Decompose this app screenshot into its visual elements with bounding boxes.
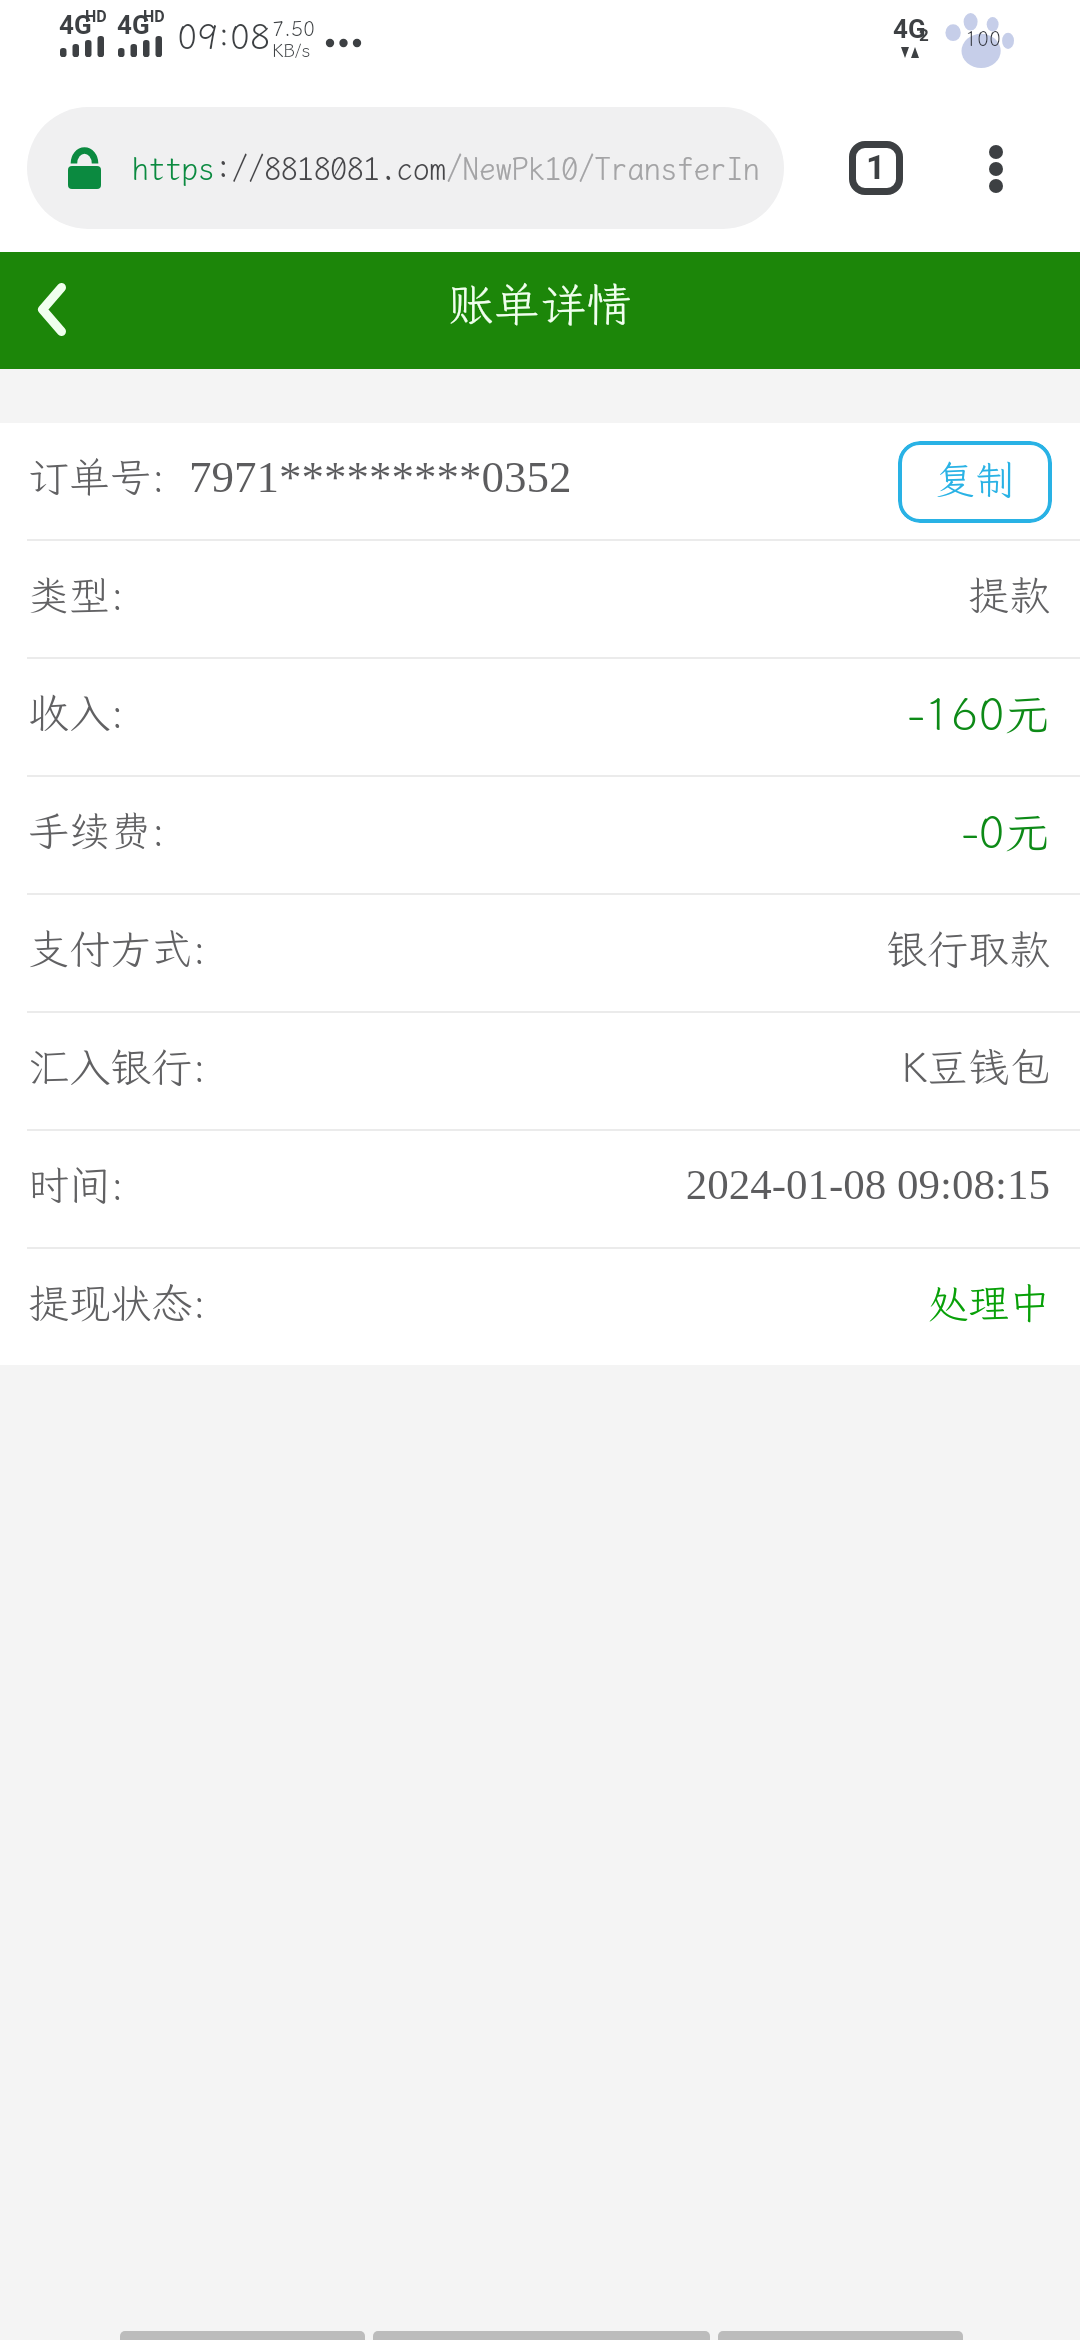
button[interactable]: 订单号: bbox=[0, 423, 1080, 539]
button[interactable]: 支付方式: bbox=[0, 895, 1080, 1011]
staticText: 1 bbox=[866, 147, 886, 187]
staticText: 支付方式: bbox=[28, 922, 207, 976]
staticText: 4G bbox=[59, 10, 92, 40]
staticText: 100 bbox=[965, 25, 1001, 51]
staticText: 提现状态: bbox=[28, 1276, 207, 1330]
button[interactable]: 复制 bbox=[898, 441, 1052, 523]
staticText: 汇入银行: bbox=[28, 1040, 207, 1094]
button[interactable]: https bbox=[27, 107, 784, 229]
button[interactable]: Back bbox=[0, 256, 110, 366]
staticText: 09:08 bbox=[177, 14, 271, 59]
staticText: 4G bbox=[117, 10, 150, 40]
staticText: 复制 bbox=[935, 453, 1015, 506]
staticText: 类型: bbox=[28, 568, 125, 622]
button[interactable]: 手续费: bbox=[0, 777, 1080, 893]
staticText: 手续费: bbox=[28, 804, 166, 858]
staticText: K豆钱包 bbox=[901, 1040, 1050, 1094]
staticText: 处理中 bbox=[927, 1276, 1050, 1330]
staticText: 时间: bbox=[28, 1158, 125, 1212]
staticText: 收入: bbox=[28, 686, 125, 740]
button[interactable]: More options bbox=[948, 121, 1044, 217]
staticText: HD bbox=[143, 7, 165, 26]
staticText: -0元 bbox=[962, 802, 1050, 861]
staticText: 7971*********0352 bbox=[189, 452, 572, 502]
staticText: 7.50 bbox=[272, 15, 315, 41]
staticText: 订单号: bbox=[28, 450, 166, 504]
staticText: https bbox=[132, 149, 215, 188]
button[interactable]: 汇入银行: bbox=[0, 1013, 1080, 1129]
staticText: 2 bbox=[919, 25, 929, 45]
staticText: /NewPk10/TransferIn bbox=[446, 149, 760, 188]
staticText: ://8818081.com bbox=[215, 149, 446, 188]
staticText: -160元 bbox=[908, 684, 1050, 743]
staticText: 账单详情 bbox=[448, 274, 632, 335]
staticText: KB/s bbox=[272, 38, 311, 62]
button[interactable]: 时间: bbox=[0, 1131, 1080, 1247]
staticText: HD bbox=[85, 7, 107, 26]
button[interactable]: Tabs bbox=[835, 127, 917, 209]
staticText: 4G bbox=[893, 14, 926, 44]
staticText: 提款 bbox=[968, 568, 1050, 622]
button[interactable]: 收入: bbox=[0, 659, 1080, 775]
staticText: 2024-01-08 09:08:15 bbox=[685, 1161, 1050, 1209]
button[interactable]: 类型: bbox=[0, 541, 1080, 657]
button[interactable]: 提现状态: bbox=[0, 1249, 1080, 1365]
staticText: 银行取款 bbox=[886, 922, 1050, 976]
